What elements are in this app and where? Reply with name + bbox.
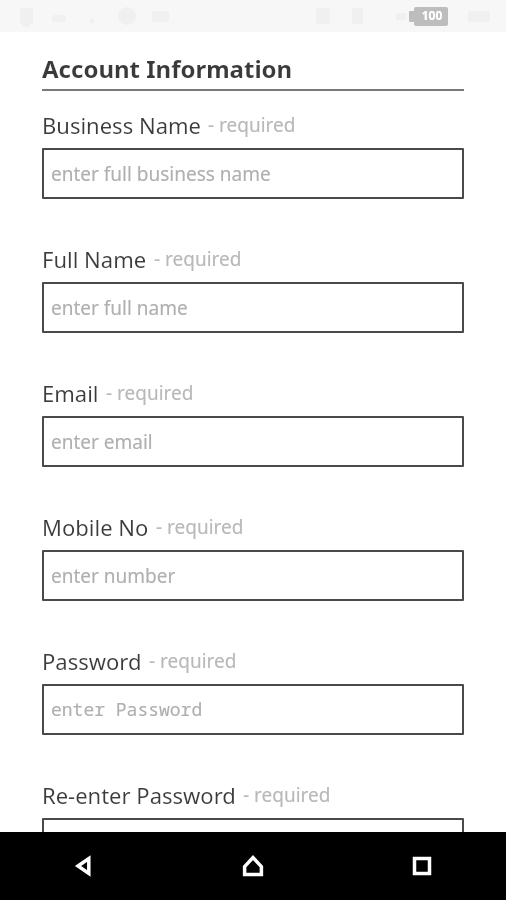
staticText: - required: [149, 648, 237, 674]
button[interactable]: enter Password: [42, 684, 464, 735]
staticText: re-enter Password: [51, 831, 235, 856]
staticText: Business Name: [42, 110, 201, 140]
staticText: enter email: [51, 429, 153, 455]
staticText: - required: [106, 380, 194, 406]
staticText: - required: [156, 514, 244, 540]
button[interactable]: Back: [0, 832, 168, 900]
staticText: Re-enter Password: [42, 780, 236, 810]
staticText: Mobile No: [42, 512, 149, 542]
button[interactable]: enter full business name: [42, 148, 464, 199]
button[interactable]: enter email: [42, 416, 464, 467]
button[interactable]: Recent apps: [337, 832, 506, 900]
staticText: enter full name: [51, 295, 188, 321]
staticText: Email: [42, 378, 99, 408]
staticText: enter number: [51, 563, 176, 589]
staticText: - required: [243, 782, 331, 808]
staticText: - required: [154, 246, 242, 272]
button[interactable]: Home: [168, 832, 337, 900]
staticText: Account Information: [42, 52, 293, 85]
staticText: Password: [42, 646, 142, 676]
button[interactable]: enter number: [42, 550, 464, 601]
staticText: enter Password: [51, 697, 203, 722]
staticText: enter full business name: [51, 161, 271, 187]
button[interactable]: re-enter Password: [42, 818, 464, 869]
staticText: - required: [208, 112, 296, 138]
staticText: 100: [417, 7, 447, 23]
button[interactable]: enter full name: [42, 282, 464, 333]
staticText: Full Name: [42, 244, 147, 274]
